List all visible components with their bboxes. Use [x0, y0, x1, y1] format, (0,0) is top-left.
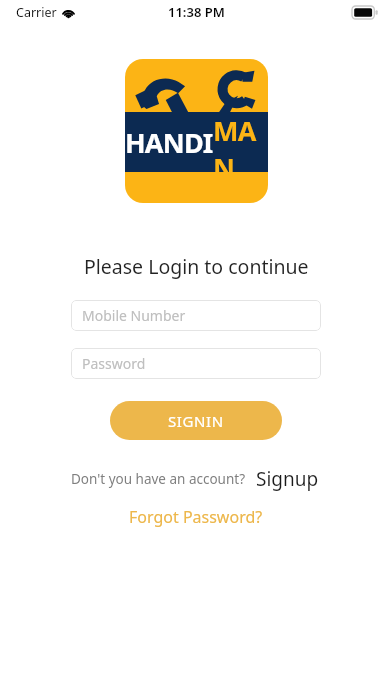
other: HANDIMAN logo: [125, 59, 268, 203]
button[interactable]: Password: [71, 348, 321, 379]
staticText: Don't you have an account?: [71, 470, 246, 488]
staticText: Signup: [256, 466, 319, 492]
staticText: Forgot Password?: [129, 506, 263, 528]
staticText: Password: [82, 354, 146, 373]
staticText: SIGNIN: [168, 411, 224, 431]
staticText: Carrier: [16, 4, 57, 21]
staticText: Mobile Number: [82, 306, 186, 325]
button[interactable]: Signup: [254, 464, 321, 494]
staticText: Please Login to continue: [84, 253, 309, 280]
button[interactable]: Mobile Number: [71, 300, 321, 331]
button[interactable]: SIGNIN: [110, 401, 282, 440]
staticText: MAN: [213, 112, 268, 172]
button[interactable]: Forgot Password?: [125, 504, 267, 530]
staticText: HANDI: [125, 124, 213, 161]
staticText: 11:38 PM: [168, 3, 225, 21]
